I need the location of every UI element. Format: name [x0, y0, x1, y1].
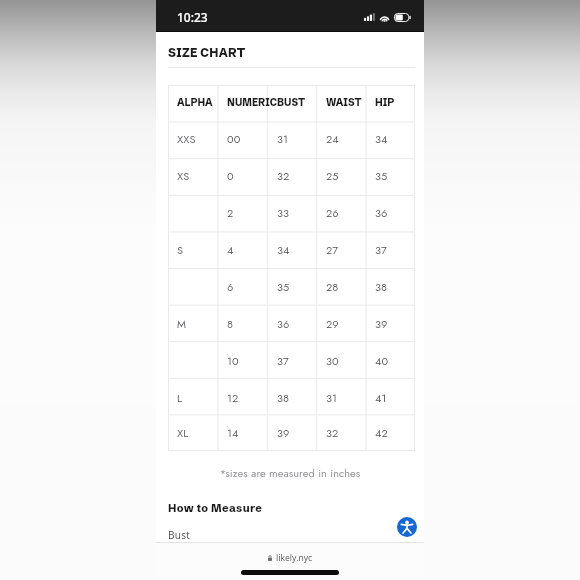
staticText: 28 [326, 279, 339, 295]
staticText: 26 [326, 205, 339, 221]
staticText: 36 [277, 316, 290, 332]
staticText: 34 [277, 242, 290, 258]
staticText: 38 [375, 279, 388, 295]
staticText: M [177, 316, 187, 332]
staticText: 00 [227, 131, 241, 147]
staticText: 29 [326, 316, 339, 332]
staticText: 39 [375, 316, 388, 332]
staticText: 10 [227, 353, 239, 369]
button[interactable]: Accessibility options [397, 517, 417, 537]
staticText: 36 [375, 205, 388, 221]
staticText: likely.nyc [276, 552, 313, 564]
staticText: 4 [227, 242, 234, 258]
staticText: 31 [277, 131, 289, 147]
staticText: L [177, 390, 183, 406]
staticText: 8 [227, 316, 234, 332]
staticText: BUST [277, 96, 306, 108]
staticText: 25 [326, 168, 339, 184]
staticText: 35 [375, 168, 388, 184]
staticText: 37 [375, 242, 387, 258]
staticText: How to Measure [168, 501, 263, 515]
staticText: 33 [277, 205, 290, 221]
staticText: HIP [375, 96, 395, 108]
staticText: 12 [227, 390, 239, 406]
staticText: 31 [326, 390, 338, 406]
staticText: *sizes are measured in inches [156, 465, 424, 481]
staticText: Bust [168, 528, 191, 542]
staticText: XS [177, 168, 190, 184]
staticText: WAIST [326, 96, 362, 108]
staticText: 34 [375, 131, 388, 147]
staticText: 40 [375, 353, 389, 369]
staticText: 32 [277, 168, 290, 184]
staticText: 39 [277, 425, 290, 441]
staticText: 30 [326, 353, 339, 369]
staticText: 24 [326, 131, 339, 147]
staticText: 6 [227, 279, 234, 295]
staticText: 35 [277, 279, 290, 295]
staticText: 14 [227, 425, 239, 441]
staticText: ALPHA [177, 96, 213, 108]
staticText: 38 [277, 390, 290, 406]
staticText: NUMERIC [227, 96, 277, 108]
staticText: 41 [375, 390, 387, 406]
staticText: 0 [227, 168, 234, 184]
staticText: 2 [227, 205, 234, 221]
staticText: 32 [326, 425, 339, 441]
staticText: 37 [277, 353, 289, 369]
staticText: 10:23 [177, 9, 208, 25]
staticText: 42 [375, 425, 388, 441]
staticText: S [177, 242, 184, 258]
staticText: SIZE CHART [168, 45, 246, 60]
staticText: XL [177, 425, 189, 441]
staticText: 27 [326, 242, 339, 258]
staticText: XXS [177, 131, 196, 147]
